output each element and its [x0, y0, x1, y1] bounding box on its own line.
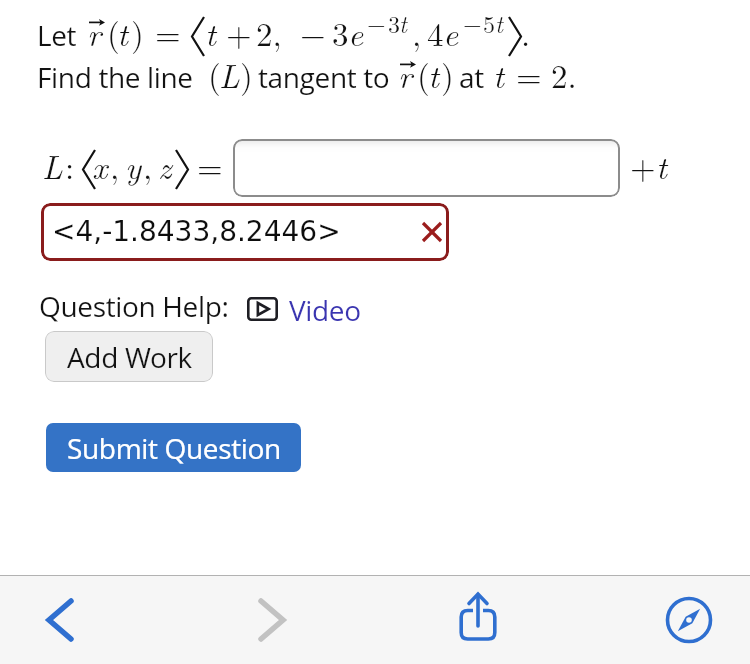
- staticText: tangent to: [258, 58, 390, 96]
- staticText: 3: [388, 6, 400, 40]
- staticText: (: [208, 51, 221, 98]
- staticText: :: [65, 142, 75, 189]
- button[interactable]: Video: [247, 291, 361, 327]
- staticText: −: [463, 6, 482, 40]
- staticText: y: [125, 142, 142, 189]
- staticText: Question Help:: [39, 287, 229, 325]
- button[interactable]: Forward: [241, 589, 303, 651]
- staticText: t: [117, 9, 128, 56]
- staticText: Let: [37, 16, 77, 54]
- button[interactable]: Submit Question: [46, 423, 301, 472]
- staticText: =: [197, 142, 223, 189]
- staticText: <4,-1.8433,8.2446>: [52, 215, 341, 248]
- staticText: −: [300, 9, 326, 56]
- staticText: ,: [110, 142, 120, 189]
- button[interactable]: <4,-1.8433,8.2446>: [41, 203, 449, 261]
- staticText: z: [158, 142, 172, 189]
- staticText: Find the line: [37, 58, 193, 96]
- staticText: r: [87, 9, 101, 56]
- staticText: Add Work: [67, 338, 192, 376]
- staticText: t: [205, 9, 216, 56]
- staticText: =: [155, 9, 181, 56]
- staticText: .: [521, 9, 531, 56]
- staticText: ,: [412, 9, 422, 56]
- staticText: 3: [332, 9, 349, 56]
- staticText: r: [398, 51, 412, 98]
- button[interactable]: Tabs: [658, 589, 720, 651]
- button[interactable]: Back: [29, 589, 91, 651]
- staticText: t: [493, 51, 504, 98]
- staticText: (: [417, 51, 430, 98]
- staticText: ): [240, 51, 253, 98]
- staticText: 2,: [256, 9, 282, 56]
- staticText: t: [428, 51, 439, 98]
- staticText: e: [443, 9, 459, 56]
- staticText: Submit Question: [67, 429, 281, 467]
- staticText: ,: [143, 142, 153, 189]
- staticText: 5: [483, 6, 495, 40]
- staticText: at: [459, 58, 484, 96]
- staticText: =: [516, 51, 542, 98]
- staticText: t: [399, 6, 407, 40]
- staticText: L: [219, 51, 240, 98]
- staticText: t: [495, 6, 503, 40]
- staticText: t: [656, 142, 667, 189]
- button[interactable]: Answer field: [233, 139, 620, 197]
- staticText: −: [367, 6, 386, 40]
- staticText: (: [107, 9, 120, 56]
- staticText: Video: [289, 291, 361, 327]
- button[interactable]: Add Work: [45, 331, 213, 382]
- staticText: L: [42, 142, 63, 189]
- staticText: 2.: [551, 51, 577, 98]
- staticText: +: [226, 9, 252, 56]
- staticText: e: [348, 9, 364, 56]
- staticText: ): [131, 9, 144, 56]
- staticText: +: [630, 142, 656, 189]
- staticText: 4: [427, 9, 444, 56]
- staticText: x: [92, 142, 108, 189]
- button[interactable]: Share: [447, 589, 509, 651]
- staticText: ): [441, 51, 454, 98]
